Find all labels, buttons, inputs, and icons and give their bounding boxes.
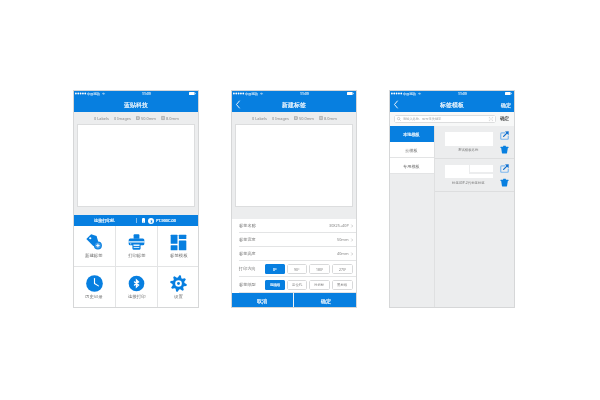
staticText: 新建标签 <box>282 101 306 109</box>
staticText: 对折标 <box>314 283 325 287</box>
staticText: 本地模板 <box>403 132 420 137</box>
staticText: 0 Images <box>114 116 131 121</box>
staticText: 打印方向 <box>239 266 256 271</box>
staticText: 黑标纸 <box>337 283 348 287</box>
button[interactable]: Delete <box>499 144 510 155</box>
staticText: 0 Labels <box>252 116 267 121</box>
button[interactable]: 连接打印 <box>116 267 157 308</box>
staticText: 标签名称 <box>239 223 256 228</box>
button[interactable]: 新建标签 <box>73 226 115 266</box>
staticText: 标签宽度 <box>239 237 256 242</box>
button[interactable]: Back <box>389 97 403 112</box>
staticText: 蓝贴科技 <box>124 101 148 109</box>
staticText: 11:09 <box>458 91 467 96</box>
button[interactable]: PT-900C-00 <box>137 215 199 226</box>
staticText: 确定 <box>321 298 331 304</box>
staticText: 确定 <box>501 102 511 108</box>
button[interactable]: Delete <box>499 177 510 188</box>
staticText: 8.0mm <box>166 116 179 121</box>
button[interactable]: 定位孔 <box>287 280 307 290</box>
button[interactable]: 确定 <box>294 293 357 308</box>
staticText: 中国移动 <box>403 92 416 96</box>
staticText: 取消 <box>257 298 267 304</box>
button[interactable]: Share <box>499 163 510 174</box>
button[interactable]: 90° <box>287 264 307 274</box>
staticText: 标签模板 <box>170 253 188 259</box>
staticText: 30X25+40P <box>329 223 349 228</box>
staticText: 请输入名称、型号等关键字 <box>403 117 442 121</box>
button[interactable]: 专用模板 <box>389 158 434 174</box>
staticText: 定位孔 <box>292 283 303 287</box>
staticText: 0 Images <box>272 116 289 121</box>
staticText: 标签纸型 <box>239 282 256 287</box>
button[interactable]: 270° <box>332 264 353 274</box>
staticText: 270° <box>339 267 347 272</box>
button[interactable]: 历史记录 <box>73 267 115 308</box>
staticText: 0 Labels <box>94 116 109 121</box>
staticText: 专用模板 <box>403 164 420 169</box>
staticText: 确定 <box>500 116 510 122</box>
button[interactable]: Back <box>231 97 245 112</box>
button[interactable]: 设置 <box>158 267 199 308</box>
staticText: 中国移动 <box>87 92 100 96</box>
staticText: 标签模板 <box>440 101 464 109</box>
staticText: 50mm <box>337 237 349 242</box>
staticText: 云模板 <box>405 148 418 153</box>
button[interactable]: 对折标 <box>309 280 330 290</box>
staticText: 连续纸 <box>270 283 281 287</box>
staticText: 新建标签 <box>85 253 103 259</box>
button[interactable]: 180° <box>309 264 330 274</box>
button[interactable]: 连续纸 <box>265 280 285 290</box>
staticText: 11:09 <box>300 91 309 96</box>
staticText: 标签高度 <box>239 251 256 256</box>
staticText: 8.0mm <box>324 116 337 121</box>
staticText: 40mm <box>337 251 349 256</box>
button[interactable]: 取消 <box>231 293 293 308</box>
button[interactable]: 黑标纸 <box>332 280 353 290</box>
button[interactable]: 云模板 <box>389 142 434 158</box>
staticText: 中国移动 <box>245 92 258 96</box>
button[interactable]: 连接打印机 <box>73 215 136 226</box>
button[interactable]: 标签高度 <box>231 247 357 260</box>
staticText: 连接打印机 <box>94 218 115 223</box>
staticText: 180° <box>316 267 324 272</box>
button[interactable]: 0° <box>265 264 285 274</box>
staticText: 打印标签 <box>128 253 146 259</box>
staticText: 测试模板名称 <box>458 148 479 152</box>
button[interactable]: 标签模板 <box>158 226 199 266</box>
staticText: 90° <box>294 267 300 272</box>
button[interactable]: 打印标签 <box>116 226 157 266</box>
staticText: 连接打印 <box>128 294 146 300</box>
button[interactable]: 确定 <box>499 112 511 126</box>
staticText: 11:09 <box>142 91 151 96</box>
button[interactable]: 请输入名称、型号等关键字 <box>394 115 496 123</box>
staticText: 历史记录 <box>85 294 103 300</box>
staticText: PT-900C-00 <box>156 218 176 223</box>
button[interactable]: Share <box>499 130 510 141</box>
button[interactable]: 本地模板 <box>389 126 434 142</box>
staticText: 设置 <box>174 294 183 300</box>
button[interactable]: 标签宽度 <box>231 233 357 246</box>
staticText: 50.0mm <box>299 116 314 121</box>
button[interactable]: 标签名称 <box>231 219 357 232</box>
staticText: 0° <box>273 267 277 272</box>
button[interactable]: 确定 <box>497 97 515 112</box>
staticText: 标签40P-2代标签标签 <box>452 180 485 185</box>
staticText: 50.0mm <box>141 116 156 121</box>
